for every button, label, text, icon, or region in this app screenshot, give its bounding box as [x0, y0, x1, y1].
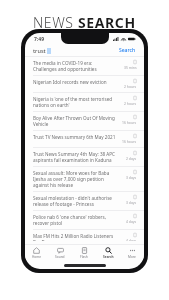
button[interactable]: Trust News Summary 4th May: 38 APC aspir…: [25, 148, 144, 167]
button[interactable]: Nigeria is 'one of the most terrorised n…: [25, 93, 144, 112]
staticText: Trust News Summary 4th May: 38 APC aspir…: [33, 151, 122, 163]
button[interactable]: Sound: [48, 245, 72, 260]
staticText: NEWS: [33, 13, 78, 32]
button[interactable]: Home: [25, 245, 48, 260]
staticText: 2 hours: [124, 84, 137, 89]
button[interactable]: Nigerian Idol records new eviction: [25, 76, 144, 93]
staticText: 7:49: [34, 36, 44, 43]
staticText: Nigeria is 'one of the most terrorised n…: [33, 96, 120, 108]
staticText: Boy Alive After Thrown Out Of Moving Veh…: [33, 115, 118, 127]
button[interactable]: trust: [25, 45, 144, 56]
staticText: 3 days: [126, 175, 137, 180]
staticText: 2 days: [126, 156, 137, 161]
button[interactable]: Search: [119, 47, 136, 54]
staticText: Sound: [55, 255, 65, 259]
staticText: Flash: [80, 255, 88, 259]
staticText: The media in COVID-19 era: Challenges an…: [33, 60, 120, 72]
button[interactable]: Trust TV News summary 6th May 2021: [25, 131, 144, 148]
staticText: Police nab 6 'one chance' robbers, recov…: [33, 214, 122, 226]
staticText: Max FM Hits 2 Million Radio Listeners Pe…: [33, 233, 122, 241]
staticText: Nigerian Idol records new eviction: [33, 79, 120, 85]
staticText: SEARCH: [78, 13, 136, 32]
staticText: Search: [119, 47, 136, 54]
button[interactable]: Max FM Hits 2 Million Radio Listeners Pe…: [25, 230, 144, 244]
button[interactable]: Police nab 6 'one chance' robbers, recov…: [25, 211, 144, 230]
button[interactable]: Flash: [72, 245, 96, 260]
staticText: Trust TV News summary 6th May 2021: [33, 134, 118, 140]
button[interactable]: The media in COVID-19 era: Challenges an…: [25, 57, 144, 76]
staticText: 35 mins: [124, 65, 137, 70]
staticText: 4 days: [126, 219, 137, 224]
staticText: 3 days: [126, 200, 137, 205]
button[interactable]: Sexual assault: More woes for Baba Ijesh…: [25, 167, 144, 192]
button[interactable]: More: [120, 245, 144, 260]
button[interactable]: Sexual molestation - didn't authorise re…: [25, 192, 144, 211]
staticText: Home: [32, 255, 42, 259]
staticText: 16 hours: [122, 139, 137, 144]
staticText: Search: [103, 255, 114, 259]
staticText: 4 days: [126, 238, 137, 241]
staticText: 2 hours: [124, 101, 137, 106]
staticText: Sexual assault: More woes for Baba Ijesh…: [33, 170, 122, 188]
staticText: More: [128, 255, 136, 259]
staticText: trust: [33, 47, 46, 54]
staticText: 16 hours: [122, 120, 137, 125]
staticText: Sexual molestation - didn't authorise re…: [33, 195, 122, 207]
button[interactable]: Search: [96, 245, 120, 260]
button[interactable]: Boy Alive After Thrown Out Of Moving Veh…: [25, 112, 144, 131]
